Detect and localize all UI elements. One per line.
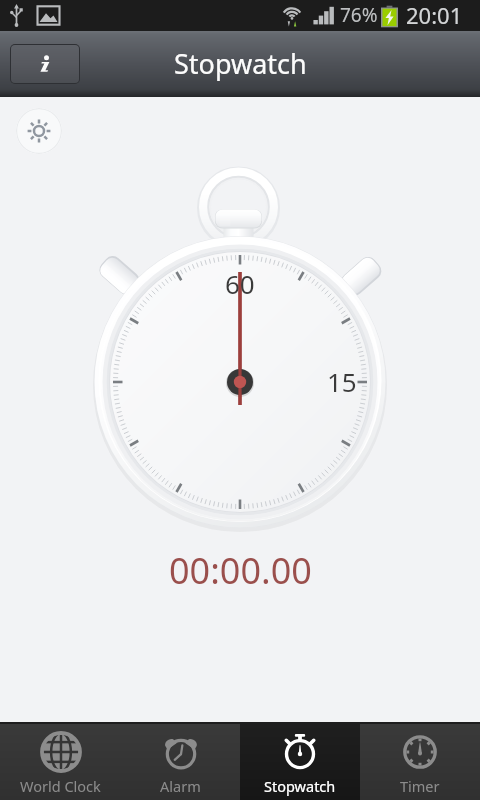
staticText: 60 (225, 266, 255, 301)
button[interactable]: Info (11, 45, 79, 83)
button[interactable]: World Clock (0, 724, 120, 800)
staticText: 76% (340, 2, 378, 28)
staticText: Stopwatch (174, 45, 307, 82)
button[interactable]: Stopwatch (240, 724, 360, 800)
staticText: 15 (327, 364, 357, 399)
button[interactable]: Alarm (120, 724, 240, 800)
staticText: Stopwatch (264, 776, 336, 796)
staticText: Alarm (160, 776, 201, 796)
staticText: 00:00.00 (169, 546, 312, 595)
staticText: World Clock (20, 776, 101, 796)
staticText: Timer (400, 776, 440, 796)
button[interactable]: Brightness (16, 108, 62, 154)
staticText: 20:01 (406, 0, 463, 30)
button[interactable]: Timer (360, 724, 480, 800)
